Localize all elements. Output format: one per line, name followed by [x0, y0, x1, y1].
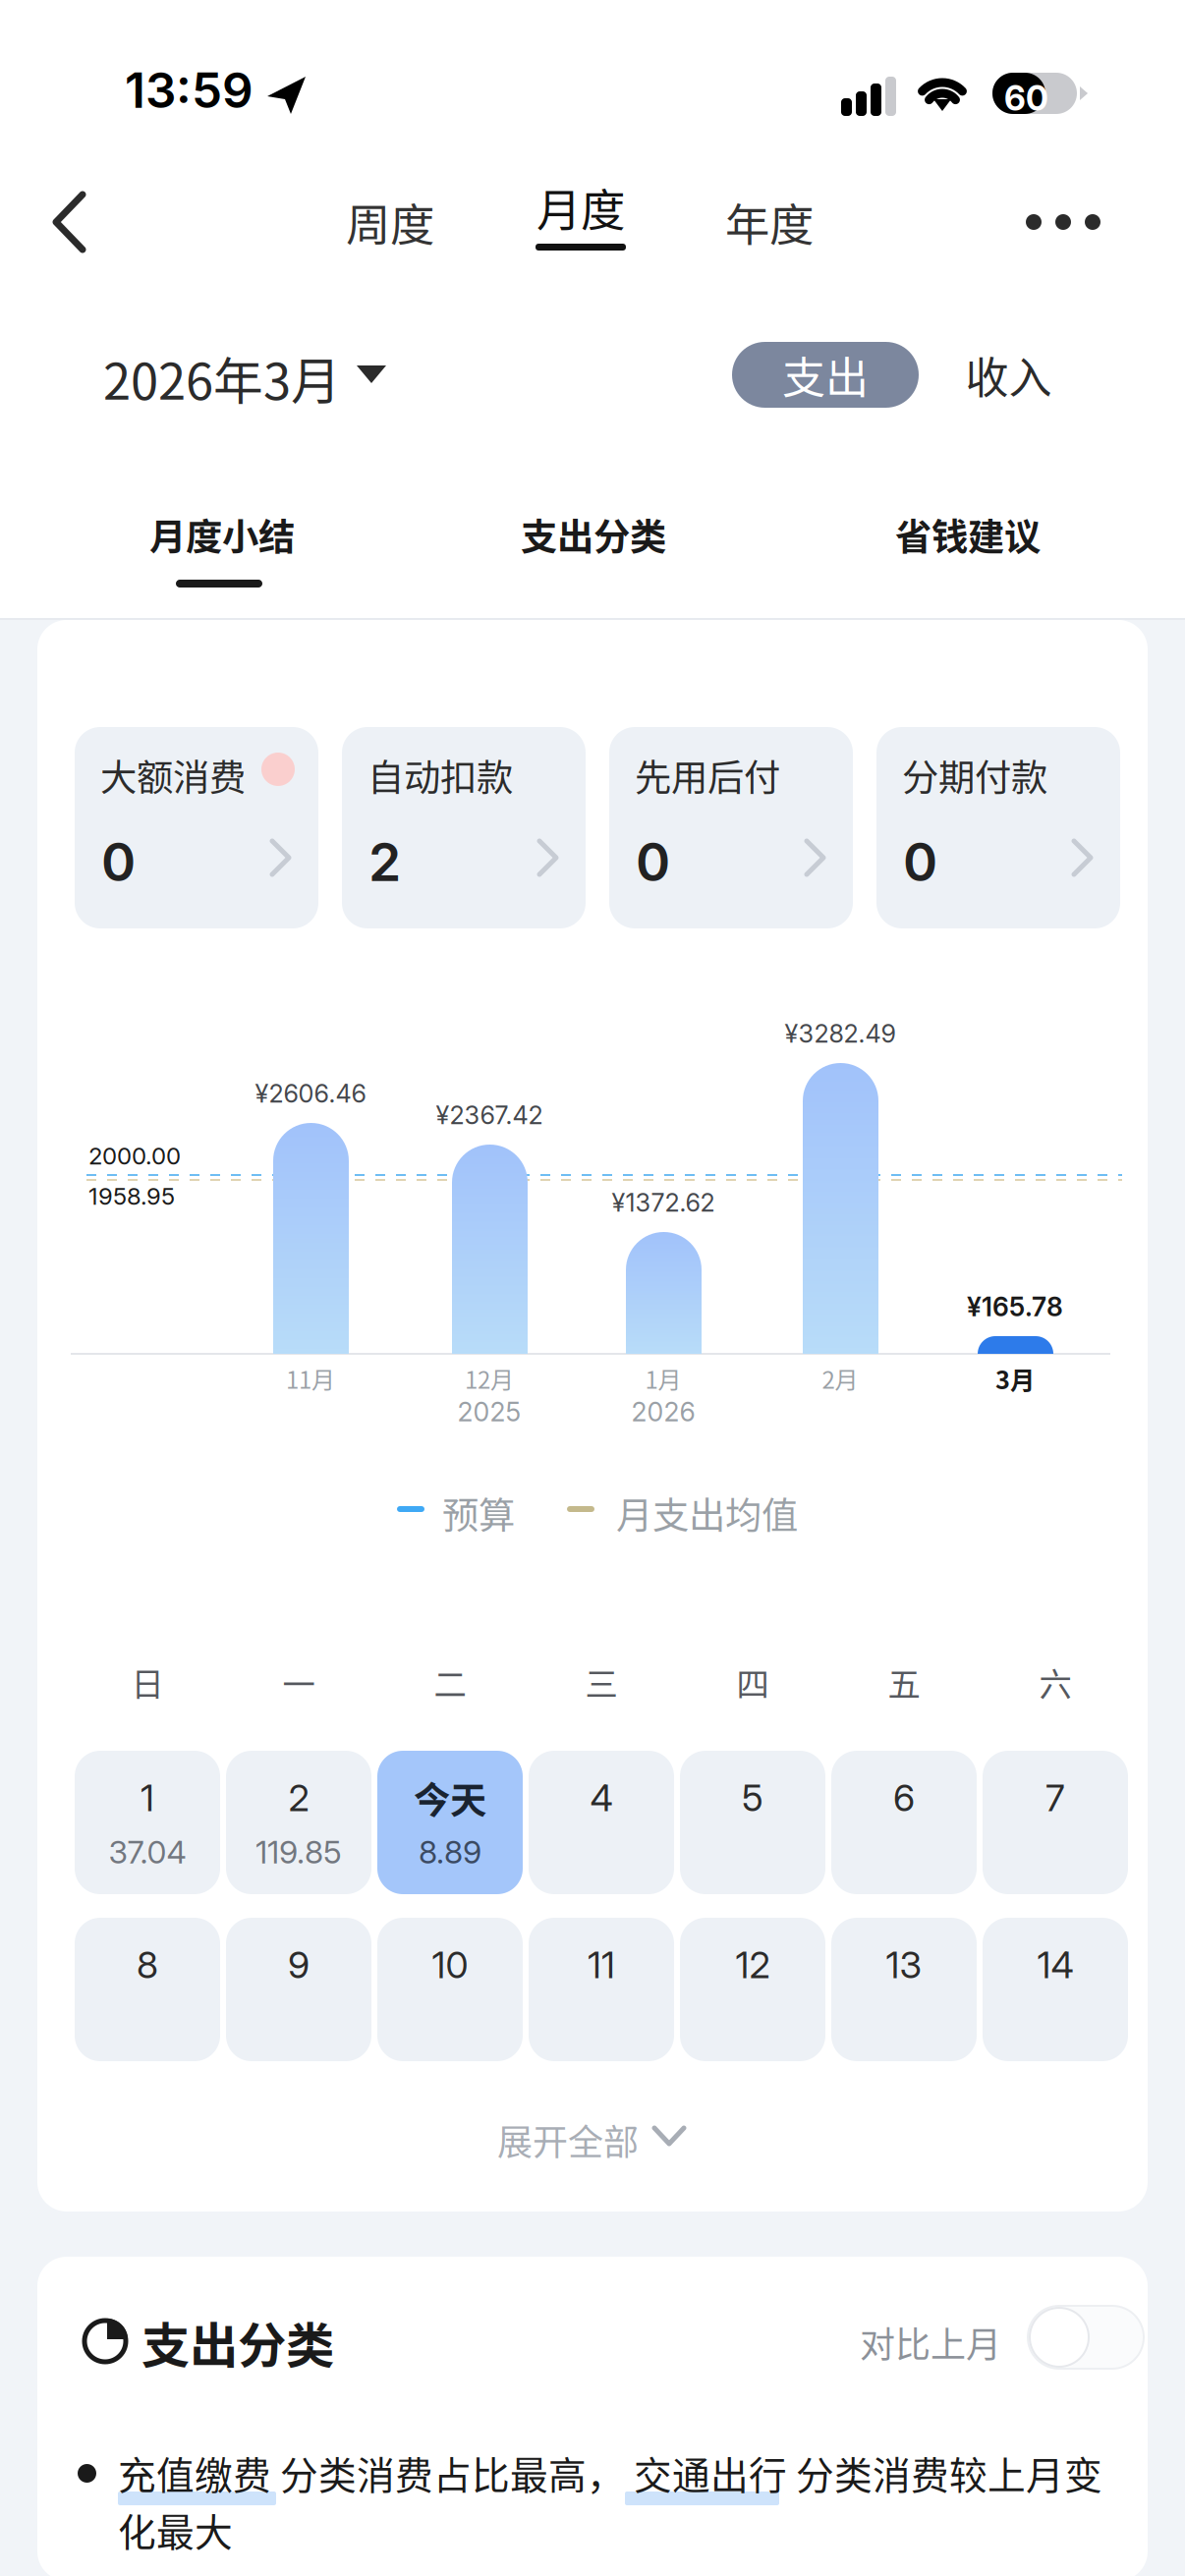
staticText: 3月: [995, 1360, 1035, 1396]
staticText: 月度: [536, 175, 625, 240]
staticText: 化最大: [118, 2502, 233, 2557]
button[interactable]: 13: [831, 1918, 977, 2061]
staticText: 今天: [414, 1771, 486, 1825]
staticText: 支出: [782, 343, 869, 406]
staticText: 大额消费: [100, 749, 246, 802]
staticText: 6: [893, 1776, 915, 1820]
staticText: 四: [736, 1658, 769, 1706]
button[interactable]: 1: [75, 1751, 220, 1894]
staticText: 9: [288, 1943, 310, 1987]
staticText: 2026: [631, 1396, 695, 1428]
staticText: 7: [1045, 1776, 1065, 1820]
staticText: ¥1372.62: [612, 1187, 715, 1218]
staticText: 对比上月: [860, 2317, 1001, 2368]
button[interactable]: 先用后付: [609, 727, 853, 928]
staticText: ¥2367.42: [436, 1100, 543, 1130]
staticText: 先用后付: [635, 749, 780, 802]
button[interactable]: 年度: [688, 177, 851, 267]
staticText: 2025: [457, 1396, 521, 1428]
button[interactable]: Compare with last month: [1028, 2306, 1144, 2369]
staticText: 二: [434, 1658, 466, 1706]
staticText: 年度: [725, 190, 814, 254]
staticText: 月度小结: [149, 508, 295, 561]
staticText: 1958.95: [88, 1182, 175, 1210]
staticText: ¥165.78: [967, 1291, 1063, 1323]
button[interactable]: 月度小结: [45, 495, 399, 613]
staticText: 自动扣款: [367, 749, 513, 802]
button[interactable]: 2026年3月: [68, 322, 422, 428]
button[interactable]: 9: [226, 1918, 371, 2061]
button[interactable]: 10: [377, 1918, 523, 2061]
button[interactable]: More options: [1012, 183, 1134, 261]
button[interactable]: 支出分类: [417, 495, 770, 613]
staticText: 60: [1004, 78, 1048, 119]
button[interactable]: 14: [983, 1918, 1128, 2061]
staticText: 收入: [965, 343, 1052, 406]
staticText: 周度: [346, 190, 434, 254]
staticText: 五: [888, 1658, 920, 1706]
staticText: 0: [101, 830, 136, 894]
staticText: 分期付款: [902, 749, 1047, 802]
button[interactable]: 展开全部: [37, 2104, 1148, 2183]
staticText: 5: [742, 1776, 763, 1820]
staticText: 2: [288, 1776, 309, 1820]
staticText: 六: [1039, 1658, 1072, 1706]
button[interactable]: 支出: [732, 342, 919, 408]
staticText: 10: [432, 1943, 468, 1987]
button[interactable]: 11: [529, 1918, 674, 2061]
staticText: 8.89: [419, 1833, 481, 1871]
staticText: 0: [903, 830, 937, 894]
staticText: 1: [141, 1776, 154, 1820]
staticText: 充值缴费 分类消费占比最高， 交通出行 分类消费较上月变: [118, 2445, 1102, 2500]
staticText: 119.85: [255, 1833, 342, 1871]
staticText: 2: [368, 830, 401, 894]
staticText: 12月: [465, 1361, 514, 1395]
button[interactable]: 6: [831, 1751, 977, 1894]
staticText: 展开全部: [497, 2114, 639, 2165]
button[interactable]: 8: [75, 1918, 220, 2061]
staticText: ¥3282.49: [785, 1019, 896, 1049]
staticText: 13: [886, 1943, 922, 1987]
button[interactable]: 7: [983, 1751, 1128, 1894]
staticText: 2000.00: [88, 1142, 181, 1170]
staticText: 12: [735, 1943, 770, 1987]
button[interactable]: 12: [680, 1918, 825, 2061]
button[interactable]: 2: [226, 1751, 371, 1894]
button[interactable]: 省钱建议: [791, 495, 1145, 613]
staticText: 13:59: [125, 61, 254, 120]
staticText: 日: [131, 1658, 164, 1706]
button[interactable]: 5: [680, 1751, 825, 1894]
button[interactable]: 4: [529, 1751, 674, 1894]
staticText: 支出分类: [521, 508, 666, 561]
staticText: 省钱建议: [895, 508, 1041, 561]
staticText: 2026年3月: [103, 342, 341, 414]
staticText: ¥2606.46: [255, 1078, 366, 1109]
staticText: 14: [1037, 1943, 1073, 1987]
staticText: 1月: [645, 1361, 681, 1395]
staticText: 三: [585, 1658, 618, 1706]
staticText: 0: [636, 830, 670, 894]
staticText: 预算: [442, 1486, 515, 1540]
staticText: 8: [137, 1943, 158, 1987]
button[interactable]: Back: [28, 175, 122, 269]
button[interactable]: 收入: [934, 342, 1083, 408]
button[interactable]: 周度: [309, 177, 472, 267]
staticText: 11月: [286, 1361, 335, 1395]
staticText: 2月: [822, 1361, 858, 1395]
button[interactable]: 分期付款: [876, 727, 1120, 928]
staticText: 37.04: [109, 1833, 186, 1871]
staticText: 4: [590, 1776, 613, 1820]
button[interactable]: 今天: [377, 1751, 523, 1894]
button[interactable]: 大额消费: [75, 727, 318, 928]
button[interactable]: 自动扣款: [342, 727, 586, 928]
staticText: 一: [282, 1658, 315, 1706]
staticText: 11: [588, 1943, 615, 1987]
button[interactable]: 月度: [506, 177, 655, 267]
staticText: 月支出均值: [616, 1486, 798, 1540]
staticText: 支出分类: [141, 2307, 334, 2377]
